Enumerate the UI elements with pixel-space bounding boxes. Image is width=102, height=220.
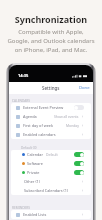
staticText: External Event Preview	[23, 105, 64, 110]
staticText: Calendar	[27, 152, 44, 157]
button[interactable]: Agenda	[11, 112, 91, 121]
staticText: Private	[27, 170, 40, 175]
button[interactable]: Software	[11, 159, 91, 168]
button[interactable]: Toggle	[74, 170, 84, 175]
staticText: Done	[79, 85, 90, 91]
button[interactable]: Subscribed Calendars (1)	[11, 186, 91, 195]
staticText: Agenda	[23, 114, 37, 119]
staticText: Compatible with Apple, Google, and Outlo…	[6, 28, 96, 54]
button[interactable]: Toggle	[74, 105, 84, 110]
staticText: Enabled calendars	[23, 132, 56, 137]
staticText: Subscribed Calendars (1)	[24, 188, 69, 193]
staticText: REMINDERS	[12, 206, 30, 210]
staticText: Settings	[42, 85, 60, 91]
staticText: CALENDARS	[12, 99, 30, 103]
staticText: Default (3)	[21, 146, 37, 150]
button[interactable]: External Event Preview	[11, 103, 91, 112]
staticText: First day of week	[23, 123, 53, 128]
staticText: Default	[46, 152, 58, 157]
staticText: Monday	[66, 123, 79, 128]
button[interactable]: Toggle	[74, 152, 84, 157]
button[interactable]: Other (1)	[11, 177, 91, 186]
button[interactable]: First day of week	[11, 121, 91, 130]
staticText: Synchronization	[0, 13, 102, 25]
button[interactable]: Enabled Lists	[11, 210, 91, 219]
staticText: 14:35	[18, 73, 29, 78]
button[interactable]: Toggle	[74, 161, 84, 166]
button[interactable]: Calendar	[11, 150, 91, 159]
button[interactable]: Private	[11, 168, 91, 177]
button[interactable]: Enabled calendars	[11, 130, 91, 139]
staticText: Other (1)	[24, 179, 40, 184]
staticText: Show all events	[54, 114, 79, 119]
staticText: Enabled Lists	[23, 212, 47, 217]
staticText: Software	[27, 161, 43, 166]
button[interactable]: Done	[79, 85, 93, 91]
